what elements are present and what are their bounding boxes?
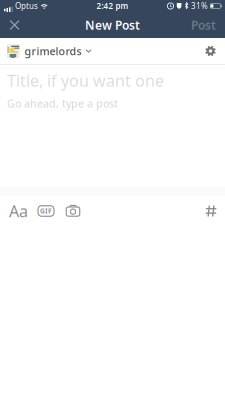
staticText: GIF	[40, 207, 52, 215]
staticText: Aa	[9, 200, 28, 222]
button[interactable]: grimelords	[0, 38, 92, 64]
staticText: New Post	[85, 17, 140, 33]
staticText: Title, if you want one	[7, 70, 164, 91]
button[interactable]: Text style	[0, 196, 28, 226]
staticText: 31%	[191, 1, 208, 11]
button[interactable]: Add GIF	[28, 196, 54, 226]
staticText: Go ahead, type a post	[7, 96, 118, 110]
staticText: grimelords	[24, 44, 81, 58]
button[interactable]: Post settings	[205, 38, 225, 64]
button[interactable]: Post	[185, 12, 225, 38]
button[interactable]: Add photo	[54, 196, 80, 226]
staticText: Post	[191, 17, 216, 33]
button[interactable]: Close	[0, 12, 25, 38]
staticText: 2:42 pm	[96, 1, 128, 11]
button[interactable]: Add tags	[205, 196, 225, 226]
staticText: Optus	[15, 1, 38, 11]
